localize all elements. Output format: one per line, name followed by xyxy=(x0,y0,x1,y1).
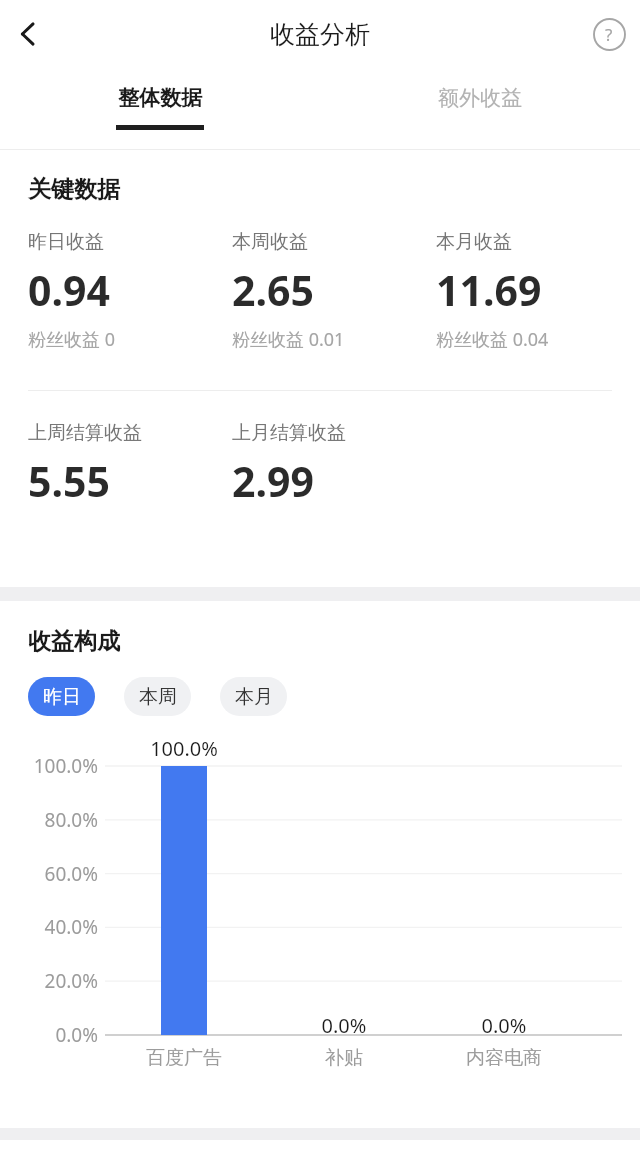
staticText: 百度广告 xyxy=(114,1046,254,1070)
staticText: 粉丝收益 0.01 xyxy=(232,327,345,352)
staticText: 本月 xyxy=(235,685,273,709)
staticText: ? xyxy=(605,23,613,46)
staticText: 粉丝收益 0.04 xyxy=(436,327,549,352)
staticText: 收益分析 xyxy=(270,19,370,50)
staticText: 5.55 xyxy=(28,453,110,509)
staticText: 0.0% xyxy=(274,1012,414,1039)
staticText: 粉丝收益 0 xyxy=(28,327,115,352)
staticText: 收益构成 xyxy=(28,627,120,656)
staticText: 昨日 xyxy=(43,685,81,709)
staticText: 本周收益 xyxy=(232,230,308,254)
staticText: 0.0% xyxy=(434,1012,574,1039)
button[interactable]: Back xyxy=(2,8,54,60)
staticText: 补贴 xyxy=(274,1046,414,1070)
staticText: 额外收益 xyxy=(438,85,522,111)
staticText: 2.65 xyxy=(232,262,314,318)
staticText: 内容电商 xyxy=(434,1046,574,1070)
staticText: 100.0% xyxy=(114,735,254,762)
button[interactable]: 本周 xyxy=(124,677,191,716)
staticText: 上月结算收益 xyxy=(232,421,346,445)
button[interactable]: 昨日 xyxy=(28,677,95,716)
staticText: 0.0% xyxy=(0,1022,98,1048)
staticText: 上周结算收益 xyxy=(28,421,142,445)
staticText: 昨日收益 xyxy=(28,230,104,254)
button[interactable]: 本月 xyxy=(220,677,287,716)
staticText: 11.69 xyxy=(436,262,542,318)
staticText: 20.0% xyxy=(0,968,98,994)
staticText: 40.0% xyxy=(0,914,98,940)
button[interactable]: 整体数据 xyxy=(0,68,320,150)
staticText: 本月收益 xyxy=(436,230,512,254)
staticText: 整体数据 xyxy=(118,85,202,111)
staticText: 100.0% xyxy=(0,753,98,779)
staticText: 60.0% xyxy=(0,861,98,887)
staticText: 80.0% xyxy=(0,807,98,833)
staticText: 本周 xyxy=(139,685,177,709)
button[interactable]: 额外收益 xyxy=(320,68,640,150)
staticText: 关键数据 xyxy=(28,175,120,204)
button[interactable]: Help xyxy=(586,11,632,57)
staticText: 2.99 xyxy=(232,453,314,509)
staticText: 0.94 xyxy=(28,262,110,318)
